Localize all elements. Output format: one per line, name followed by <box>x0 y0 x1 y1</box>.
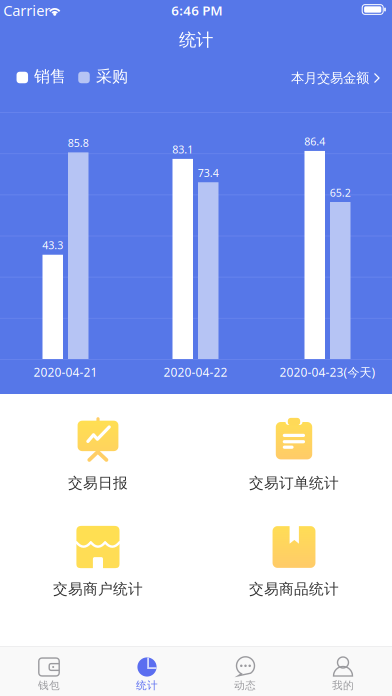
staticText: 86.4 <box>304 134 325 149</box>
button[interactable]: 统计 <box>98 647 196 696</box>
staticText: Carrier <box>3 1 50 20</box>
staticText: 2020-04-22 <box>163 364 227 380</box>
staticText: 统计 <box>136 679 158 692</box>
button[interactable]: 交易订单统计 <box>200 410 388 501</box>
staticText: 85.8 <box>68 136 89 150</box>
staticText: 65.2 <box>330 185 351 200</box>
button[interactable]: 交易商品统计 <box>200 517 388 607</box>
staticText: 43.3 <box>42 238 63 252</box>
staticText: 交易日报 <box>68 474 128 492</box>
button[interactable]: 我的 <box>294 647 392 696</box>
button[interactable]: 交易商户统计 <box>4 517 192 607</box>
staticText: 钱包 <box>38 679 60 692</box>
staticText: 交易订单统计 <box>249 474 339 492</box>
staticText: 83.1 <box>172 142 193 156</box>
staticText: 销售 <box>34 67 66 86</box>
staticText: 统计 <box>179 29 213 51</box>
staticText: 交易商户统计 <box>53 580 143 598</box>
staticText: 交易商品统计 <box>249 580 339 598</box>
staticText: 我的 <box>332 679 354 692</box>
staticText: 73.4 <box>198 166 219 180</box>
staticText: 6:46 PM <box>171 1 222 19</box>
button[interactable]: 交易日报 <box>4 410 192 501</box>
staticText: 2020-04-21 <box>33 364 97 380</box>
button[interactable]: 动态 <box>196 647 294 696</box>
button[interactable]: 本月交易金额 <box>289 64 383 92</box>
staticText: 采购 <box>96 67 128 86</box>
staticText: 2020-04-23(今天) <box>279 364 375 380</box>
button[interactable]: 钱包 <box>0 647 98 696</box>
staticText: 本月交易金额 <box>291 70 369 86</box>
staticText: 动态 <box>234 679 256 692</box>
